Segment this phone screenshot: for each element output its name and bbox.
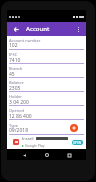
button[interactable] xyxy=(7,63,86,77)
button[interactable]: Back xyxy=(19,150,29,160)
button[interactable] xyxy=(7,105,86,119)
button[interactable] xyxy=(7,34,86,48)
staticText: 7410 xyxy=(9,57,21,64)
staticText: Account xyxy=(26,25,50,33)
staticText: 45 xyxy=(9,71,15,78)
staticText: Holder xyxy=(9,94,22,99)
button[interactable]: Home xyxy=(42,150,52,160)
staticText: OPEN xyxy=(73,141,82,145)
button[interactable] xyxy=(7,49,86,63)
button[interactable] xyxy=(7,77,86,91)
staticText: Opened xyxy=(9,108,25,113)
staticText: 12 86 400 xyxy=(9,113,32,120)
staticText: 2305 xyxy=(9,85,21,92)
button[interactable]: Back xyxy=(9,22,23,36)
button[interactable]: Recent apps xyxy=(64,150,74,160)
staticText: IFSC xyxy=(9,52,18,57)
staticText: Balance xyxy=(9,80,24,85)
staticText: Google Play xyxy=(25,143,45,148)
staticText: 3 04 200 xyxy=(9,99,29,106)
staticText: 09/2018 xyxy=(9,127,29,134)
button[interactable] xyxy=(7,91,86,105)
button[interactable] xyxy=(7,119,86,133)
staticText: Branch xyxy=(9,66,23,71)
staticText: Account number xyxy=(9,38,41,43)
staticText: Type xyxy=(9,123,18,128)
staticText: Install xyxy=(22,136,34,141)
button[interactable]: More options xyxy=(71,22,85,36)
button[interactable]: Add xyxy=(70,124,78,132)
button[interactable]: OPEN xyxy=(72,140,83,145)
staticText: 102 xyxy=(9,42,18,49)
